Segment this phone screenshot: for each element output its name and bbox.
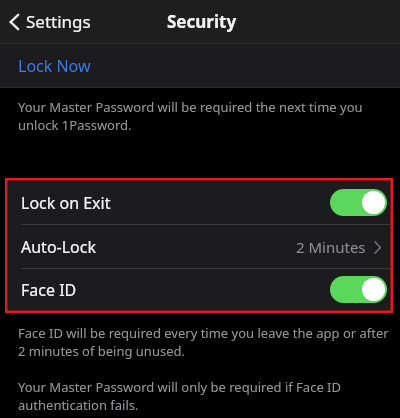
staticText: Lock on Exit bbox=[21, 192, 111, 214]
button[interactable]: Face ID bbox=[330, 276, 387, 303]
staticText: Face ID bbox=[21, 279, 77, 301]
staticText: Face ID will be required every time you … bbox=[18, 324, 389, 360]
staticText: Your Master Password will only be requir… bbox=[18, 378, 341, 414]
staticText: Lock Now bbox=[18, 55, 91, 77]
staticText: Settings bbox=[26, 10, 91, 33]
button[interactable]: Lock on Exit bbox=[8, 181, 390, 224]
staticText: 2 Minutes bbox=[296, 237, 366, 257]
button[interactable]: Settings bbox=[8, 10, 91, 33]
button[interactable]: Lock Now bbox=[0, 44, 400, 87]
staticText: Your Master Password will be required th… bbox=[18, 98, 363, 134]
staticText: Security bbox=[167, 10, 237, 33]
button[interactable]: Face ID bbox=[8, 269, 390, 310]
staticText: Auto-Lock bbox=[21, 236, 97, 258]
button[interactable]: Lock on Exit bbox=[330, 189, 387, 216]
button[interactable]: Auto-Lock bbox=[8, 225, 390, 268]
